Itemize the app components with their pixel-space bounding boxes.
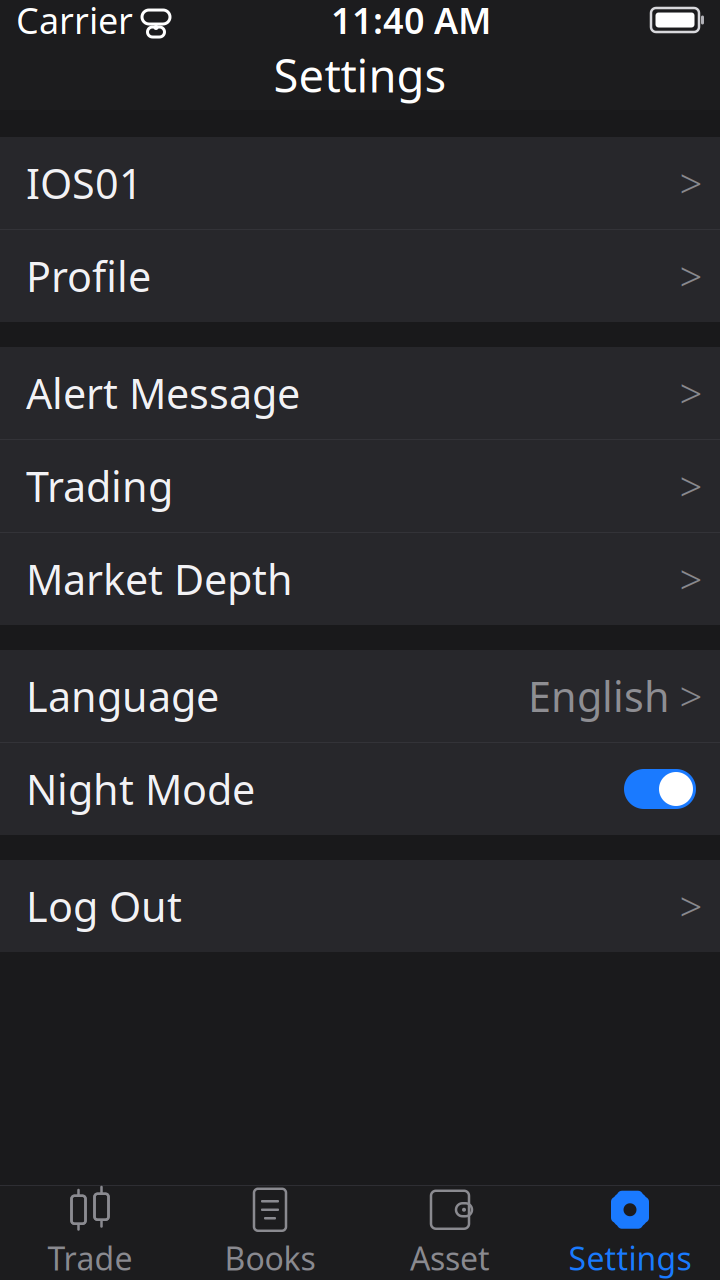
staticText: Settings [568,1237,691,1279]
staticText: Books [224,1237,315,1279]
button[interactable]: Settings [540,1185,720,1280]
staticText: Log Out [26,879,182,933]
staticText: Night Mode [26,762,255,816]
staticText: > [679,366,702,419]
staticText: IOS01 [26,156,143,210]
staticText: Profile [26,249,151,303]
button[interactable]: Language [0,650,720,742]
staticText: > [679,552,702,605]
button[interactable]: Trading [0,440,720,532]
button[interactable]: Alert Message [0,347,720,439]
button[interactable]: Profile [0,230,720,322]
button[interactable]: Night Mode [0,743,720,835]
staticText: Settings [273,45,446,105]
staticText: Language [26,669,219,723]
staticText: Carrier [16,0,133,44]
staticText: 11:40 AM [331,0,491,44]
button[interactable]: Asset [360,1185,540,1280]
button[interactable]: Log Out [0,860,720,952]
staticText: Asset [410,1237,490,1279]
button[interactable]: IOS01 [0,137,720,229]
staticText: English [528,669,670,723]
button[interactable]: Trade [0,1185,180,1280]
staticText: > [679,459,702,512]
staticText: Alert Message [26,366,300,420]
staticText: > [679,249,702,302]
staticText: Trading [26,459,173,513]
button[interactable]: Books [180,1185,360,1280]
staticText: > [679,156,702,209]
staticText: Market Depth [26,552,293,606]
staticText: > [679,669,702,722]
staticText: Trade [47,1237,132,1279]
staticText: > [679,879,702,932]
button[interactable]: Market Depth [0,533,720,625]
